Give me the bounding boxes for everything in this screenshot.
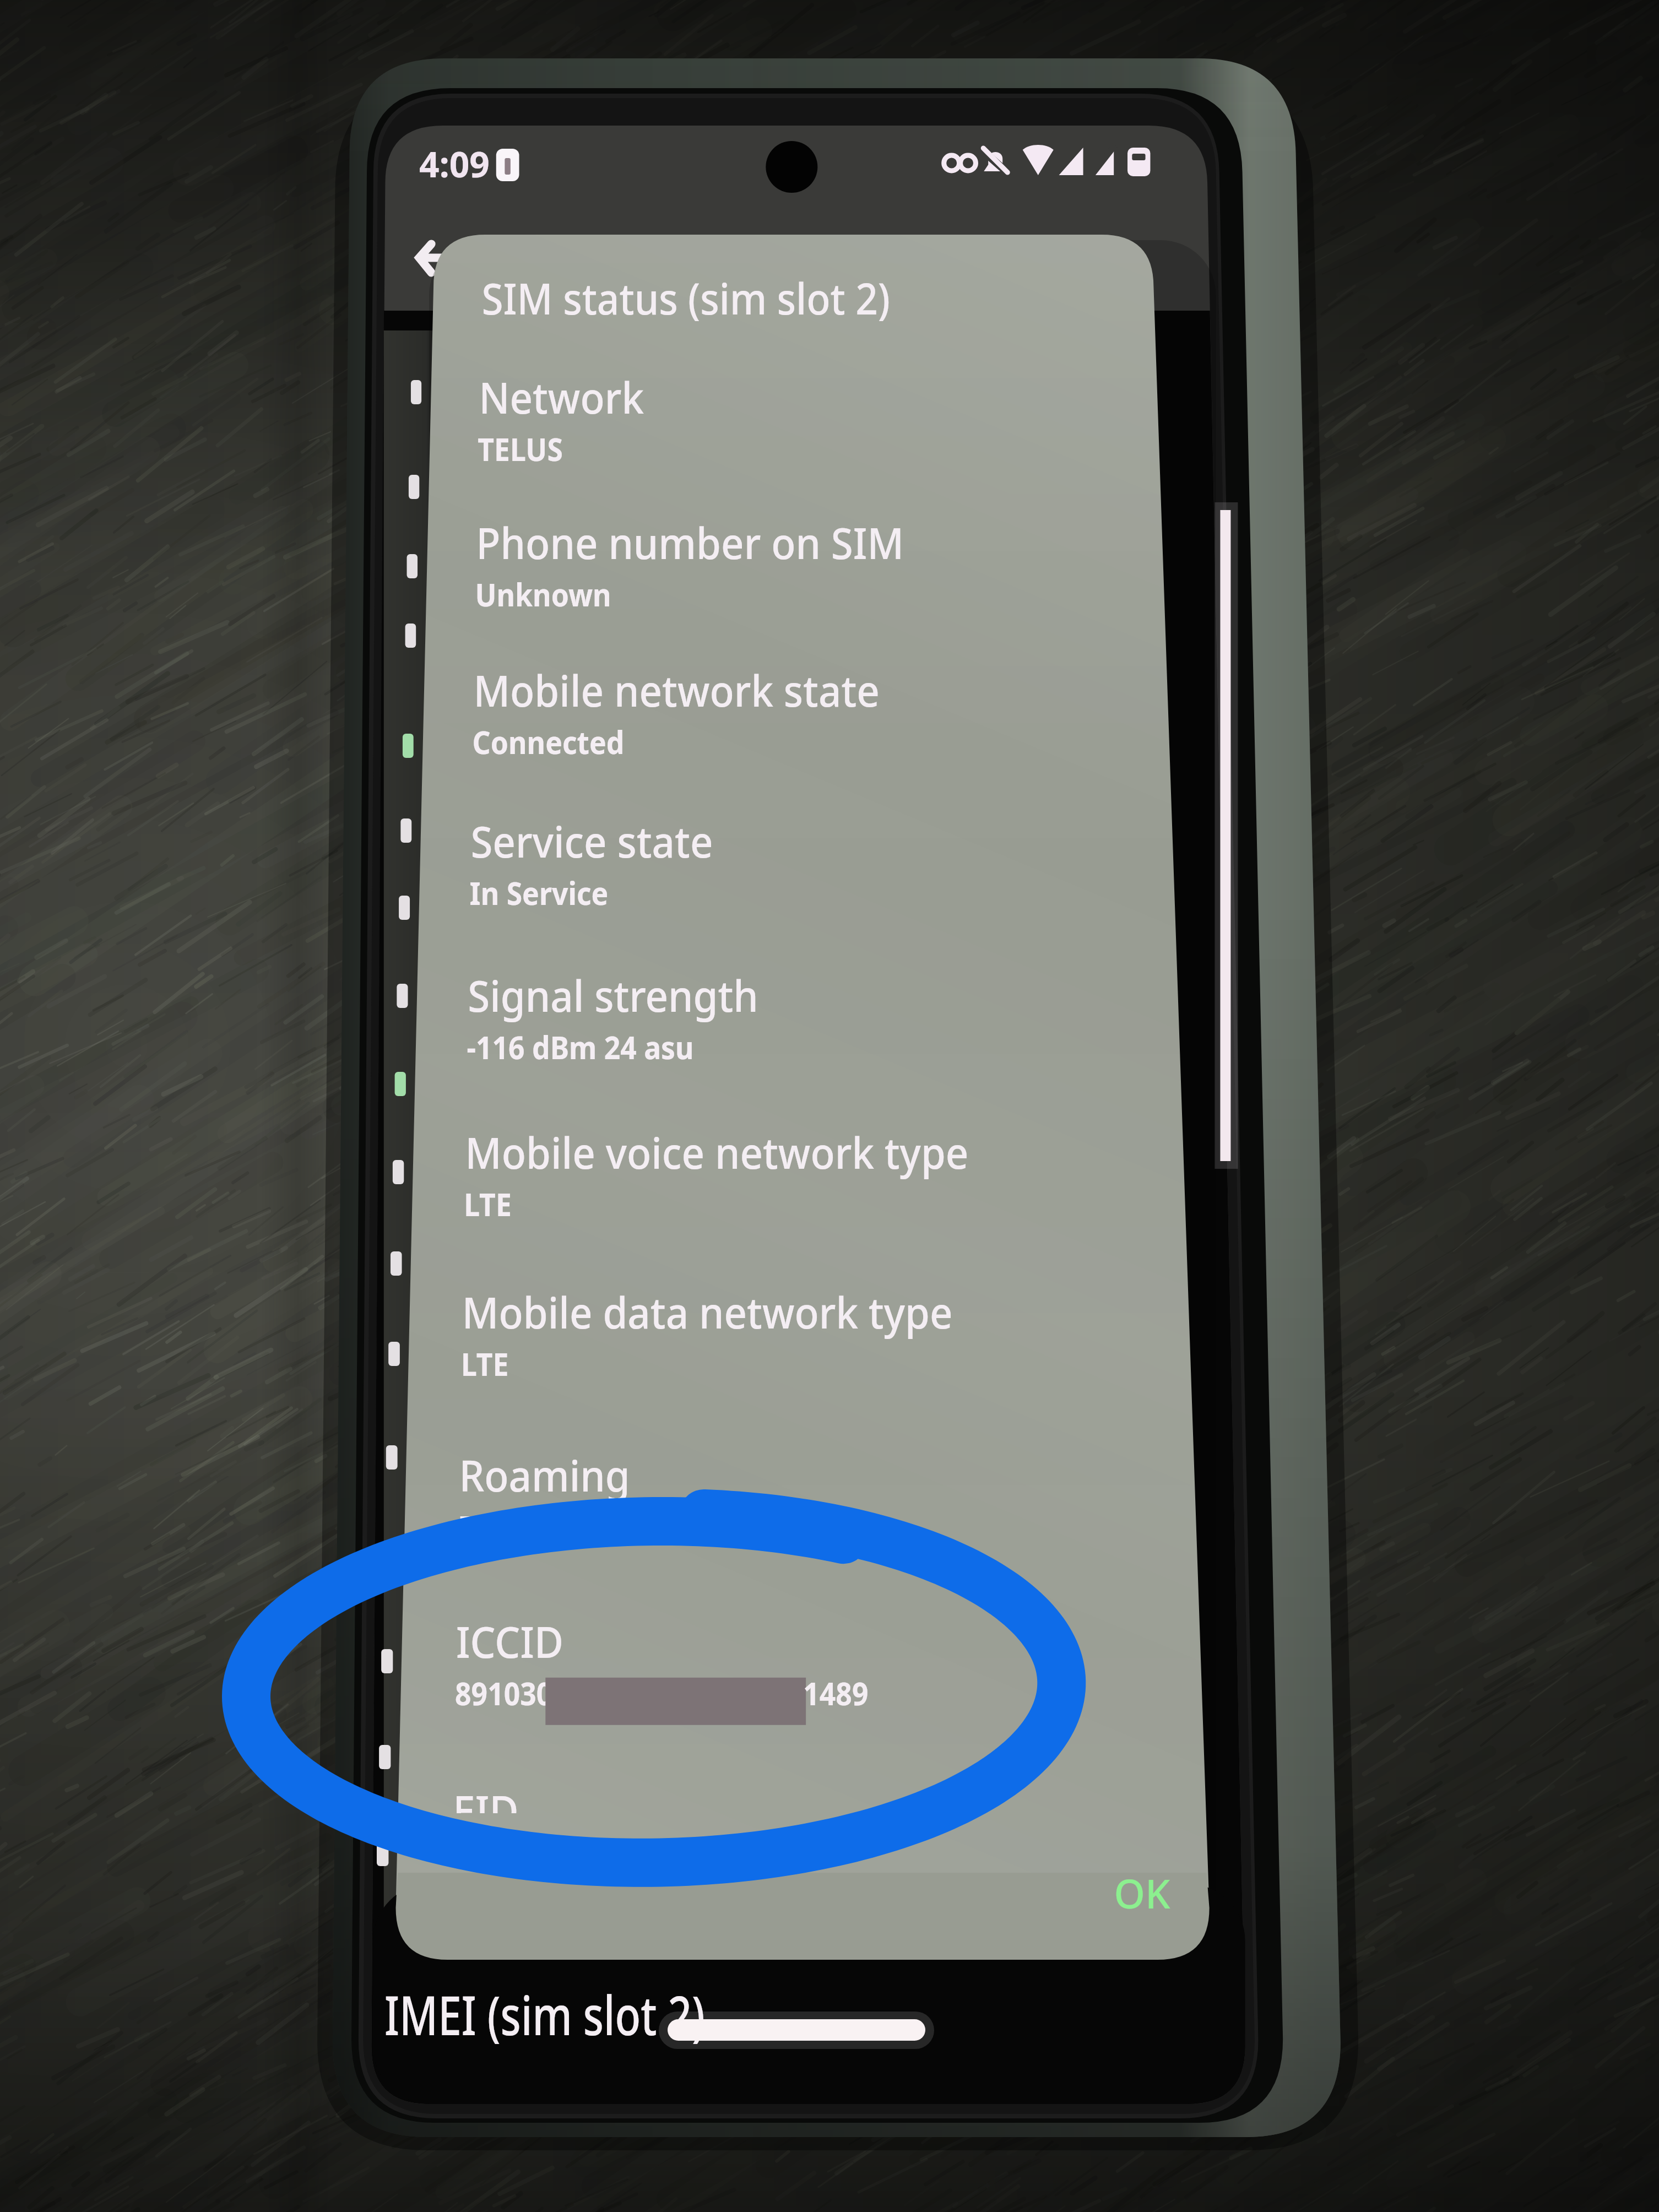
button[interactable]: Photo of the SIM status dialog on a phon… [0, 0, 1659, 2212]
